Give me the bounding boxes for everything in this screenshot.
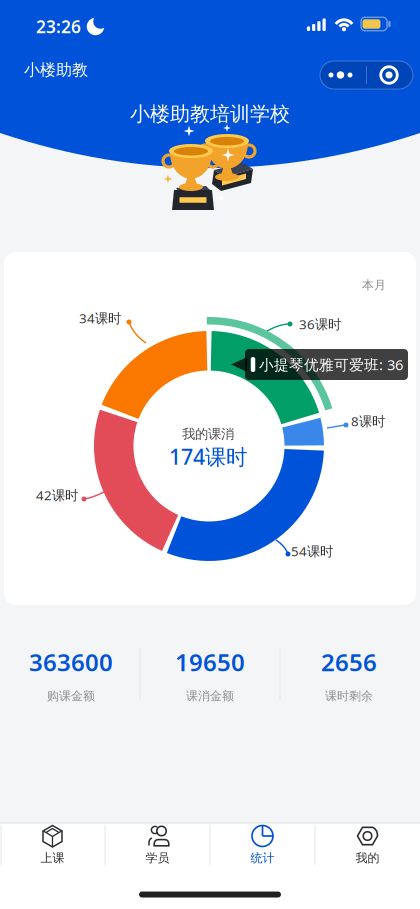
staticText: 上课 xyxy=(40,851,64,865)
staticText: 我的课消 xyxy=(182,426,234,442)
staticText: 小楼助教 xyxy=(24,60,88,80)
button[interactable]: More xyxy=(320,61,366,89)
staticText: 2656 xyxy=(321,646,377,678)
staticText: 购课金额 xyxy=(47,689,95,703)
staticText: 学员 xyxy=(145,851,169,865)
staticText: 36课时 xyxy=(299,315,341,333)
staticText: 363600 xyxy=(29,646,113,678)
staticText: 42课时 xyxy=(36,486,78,504)
staticText: 174课时 xyxy=(169,442,247,471)
staticText: 19650 xyxy=(175,646,245,678)
staticText: 课消金额 xyxy=(186,689,234,703)
staticText: 54课时 xyxy=(291,542,333,560)
staticText: 34课时 xyxy=(79,309,121,327)
staticText: 我的 xyxy=(355,851,379,865)
staticText: 小楼助教培训学校 xyxy=(130,101,290,127)
staticText: 23:26 xyxy=(36,15,81,38)
button[interactable]: 本月 xyxy=(362,278,386,292)
staticText: 本月 xyxy=(362,278,386,292)
button[interactable]: 上课 xyxy=(0,822,104,868)
staticText: 8课时 xyxy=(351,412,385,430)
button[interactable]: 我的 xyxy=(315,822,419,868)
button[interactable]: Exit mini program xyxy=(365,61,411,89)
staticText: 统计 xyxy=(250,851,274,865)
staticText: 小提琴优雅可爱班: 36 xyxy=(259,355,403,374)
button[interactable]: 学员 xyxy=(105,822,209,868)
staticText: 课时剩余 xyxy=(325,689,373,703)
button[interactable]: 统计 xyxy=(210,822,314,868)
